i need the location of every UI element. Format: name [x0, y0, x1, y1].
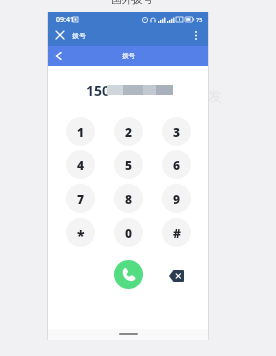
- button[interactable]: Backspace: [169, 270, 184, 282]
- button[interactable]: More options: [187, 26, 205, 44]
- button[interactable]: 2: [114, 117, 143, 146]
- button[interactable]: 7: [66, 184, 95, 213]
- staticText: 拨号: [72, 31, 86, 40]
- button[interactable]: 3: [162, 117, 191, 146]
- button[interactable]: 8: [114, 184, 143, 213]
- staticText: #: [173, 225, 181, 241]
- button[interactable]: 6: [162, 150, 191, 179]
- staticText: 7: [77, 191, 85, 207]
- button[interactable]: #: [162, 218, 191, 247]
- staticText: 09:41: [56, 15, 74, 25]
- staticText: 75: [196, 16, 203, 23]
- button[interactable]: 5: [114, 150, 143, 179]
- staticText: 5: [125, 157, 133, 173]
- staticText: 6: [173, 157, 181, 173]
- staticText: 国外拨号: [111, 0, 153, 5]
- button[interactable]: *: [66, 218, 95, 247]
- staticText: 9: [173, 191, 181, 207]
- button[interactable]: Back: [50, 48, 66, 64]
- staticText: 150: [86, 81, 111, 100]
- button[interactable]: Close: [51, 26, 69, 44]
- staticText: 3: [173, 124, 181, 140]
- button[interactable]: 9: [162, 184, 191, 213]
- button[interactable]: Call: [114, 260, 143, 289]
- staticText: 1: [77, 124, 85, 140]
- staticText: 4: [77, 157, 85, 173]
- staticText: 2: [125, 124, 133, 140]
- button[interactable]: 4: [66, 150, 95, 179]
- button[interactable]: 1: [66, 117, 95, 146]
- staticText: 拨号: [122, 52, 135, 60]
- staticText: 0: [125, 225, 133, 241]
- staticText: 8: [125, 191, 133, 207]
- staticText: *: [77, 226, 85, 245]
- button[interactable]: 0: [114, 218, 143, 247]
- staticText: 发: [208, 88, 222, 106]
